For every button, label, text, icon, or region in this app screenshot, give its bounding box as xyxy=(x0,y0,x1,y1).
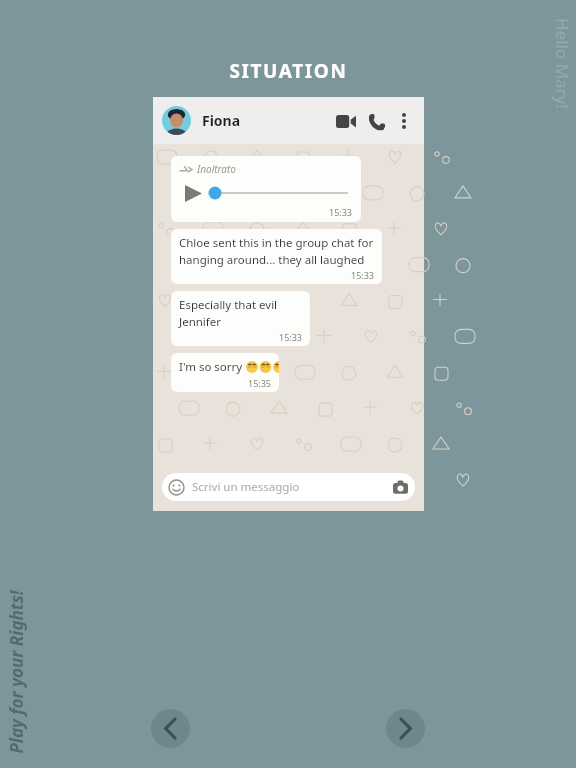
button[interactable]: Inoltrato xyxy=(171,156,361,222)
button[interactable]: Camera xyxy=(393,480,408,495)
button[interactable]: Next xyxy=(386,709,425,748)
staticText: Hello Mary! xyxy=(551,18,574,109)
button[interactable]: Video call xyxy=(333,108,359,134)
button[interactable]: Emoji xyxy=(162,473,415,501)
staticText: Especially that evil Jennifer xyxy=(179,297,303,329)
staticText: Inoltrato xyxy=(197,162,236,176)
button[interactable]: More options xyxy=(393,110,415,132)
staticText: Scrivi un messaggio xyxy=(192,479,300,495)
staticText: SITUATION xyxy=(229,58,348,84)
button[interactable]: Chloe sent this in the group chat for ha… xyxy=(171,229,382,284)
button[interactable]: Play voice message xyxy=(180,180,206,206)
staticText: 15:35 xyxy=(248,377,272,389)
button[interactable]: I'm so sorry xyxy=(171,353,279,392)
staticText: I'm so sorry xyxy=(179,359,243,375)
staticText: Chloe sent this in the group chat for ha… xyxy=(179,235,375,267)
button[interactable]: Fiona profile photo xyxy=(162,106,191,135)
staticText: 15:33 xyxy=(329,206,353,218)
staticText: 15:33 xyxy=(279,331,303,343)
button[interactable]: Voice call xyxy=(365,109,389,133)
button[interactable]: Especially that evil Jennifer xyxy=(171,291,310,346)
button[interactable]: Previous xyxy=(151,709,190,748)
staticText: 15:33 xyxy=(351,269,375,281)
staticText: Play for your Rights! xyxy=(4,589,27,753)
button[interactable]: Emoji xyxy=(169,480,184,495)
staticText: Fiona xyxy=(202,111,241,130)
